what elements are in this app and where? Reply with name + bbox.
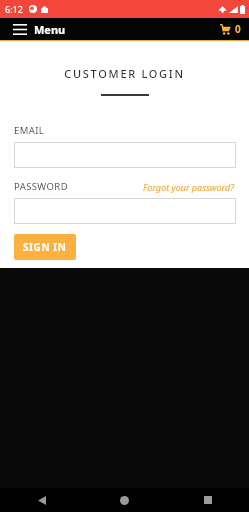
button[interactable]: Back <box>0 488 83 512</box>
staticText: PASSWORD <box>14 180 68 193</box>
staticText: CUSTOMER LOGIN <box>0 66 249 81</box>
staticText: Menu <box>34 22 66 37</box>
staticText: Forgot your password? <box>143 181 235 193</box>
staticText: 6:12 <box>5 3 23 15</box>
staticText: SIGN IN <box>23 240 67 254</box>
button[interactable] <box>14 198 236 224</box>
button[interactable] <box>14 142 236 168</box>
button[interactable]: Recent apps <box>166 488 249 512</box>
button[interactable]: Forgot your password? <box>143 181 235 193</box>
staticText: EMAIL <box>14 124 45 137</box>
button[interactable]: Home <box>83 488 166 512</box>
button[interactable]: Menu <box>0 18 74 40</box>
staticText: 0 <box>235 22 241 36</box>
button[interactable]: Shopping cart <box>220 18 249 40</box>
button[interactable]: SIGN IN <box>14 234 76 260</box>
